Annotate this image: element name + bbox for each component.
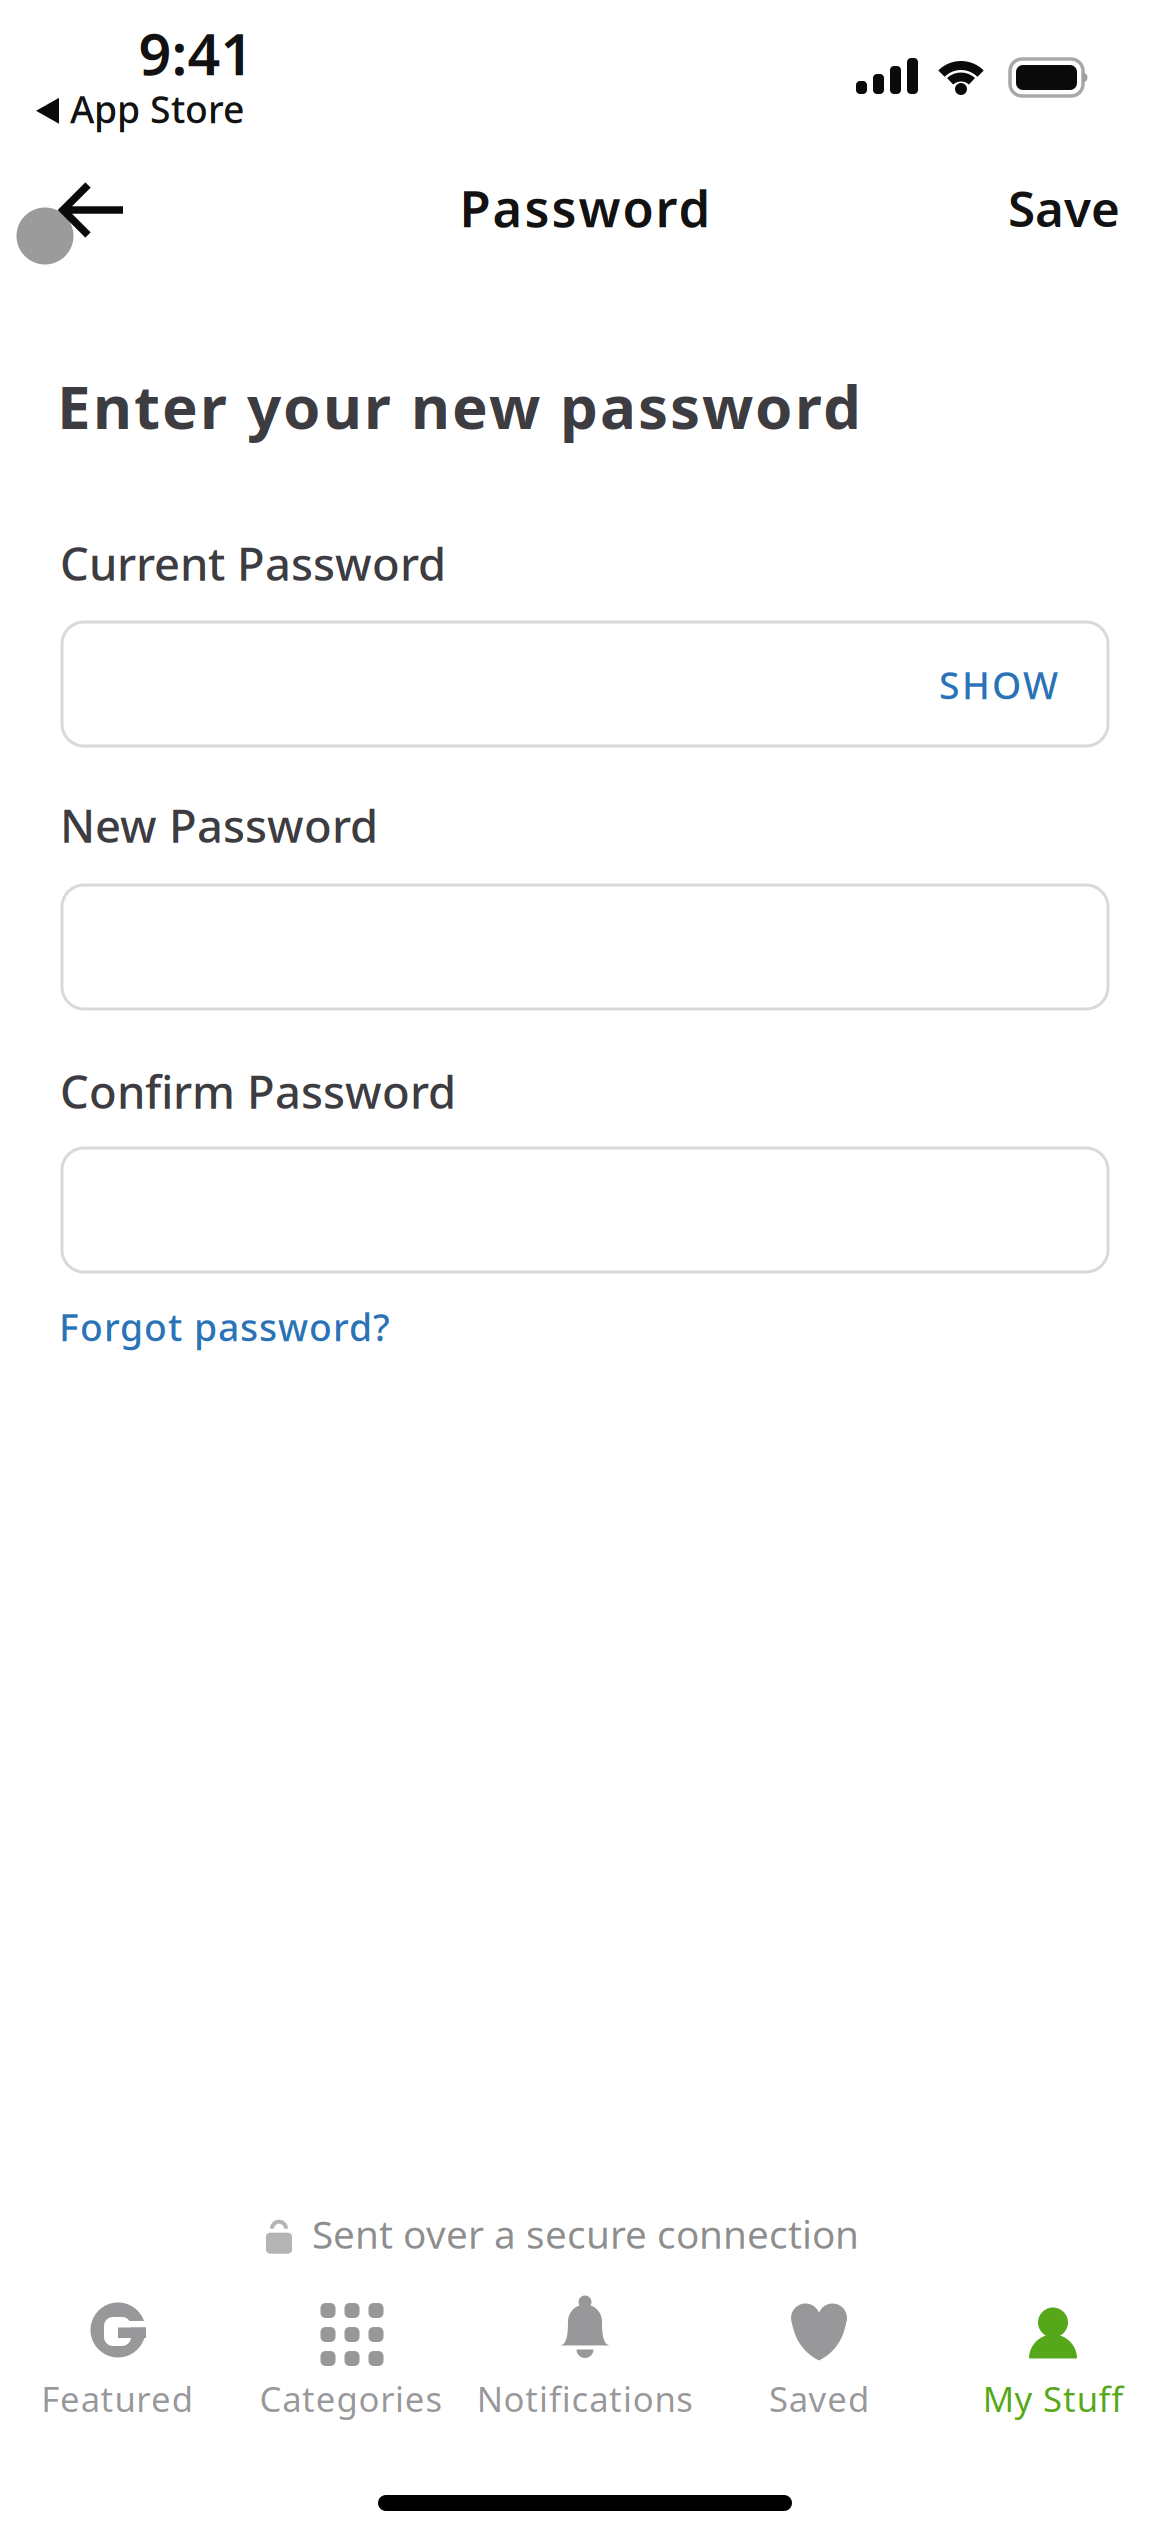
staticText: Featured bbox=[41, 2375, 193, 2421]
button[interactable]: Saved bbox=[702, 2298, 936, 2420]
button[interactable]: App Store bbox=[36, 84, 244, 134]
staticText: Enter your new password bbox=[57, 366, 861, 446]
staticText: SHOW bbox=[939, 660, 1058, 710]
button[interactable] bbox=[62, 1148, 1108, 1272]
staticText: Confirm Password bbox=[60, 1061, 456, 1121]
button[interactable]: Notifications bbox=[468, 2298, 702, 2420]
button[interactable]: Featured bbox=[0, 2298, 234, 2420]
staticText: Saved bbox=[769, 2375, 869, 2421]
button[interactable]: Categories bbox=[234, 2298, 468, 2420]
staticText: 9:41 bbox=[138, 15, 253, 91]
button[interactable] bbox=[16, 184, 126, 268]
staticText: Password bbox=[459, 174, 710, 241]
staticText: Notifications bbox=[477, 2375, 693, 2421]
staticText: Save bbox=[1008, 175, 1120, 240]
staticText: App Store bbox=[70, 84, 244, 134]
button[interactable] bbox=[62, 622, 1108, 746]
staticText: Current Password bbox=[60, 533, 446, 593]
button[interactable]: SHOW bbox=[939, 660, 1058, 710]
button[interactable]: Forgot password? bbox=[59, 1302, 390, 1352]
staticText: Forgot password? bbox=[59, 1302, 390, 1352]
button[interactable] bbox=[62, 885, 1108, 1009]
staticText: Categories bbox=[259, 2375, 443, 2421]
staticText: Sent over a secure connection bbox=[312, 2208, 859, 2259]
staticText: My Stuff bbox=[983, 2375, 1123, 2421]
button[interactable]: My Stuff bbox=[936, 2298, 1170, 2420]
button[interactable]: Save bbox=[1008, 175, 1120, 240]
staticText: New Password bbox=[60, 795, 378, 855]
